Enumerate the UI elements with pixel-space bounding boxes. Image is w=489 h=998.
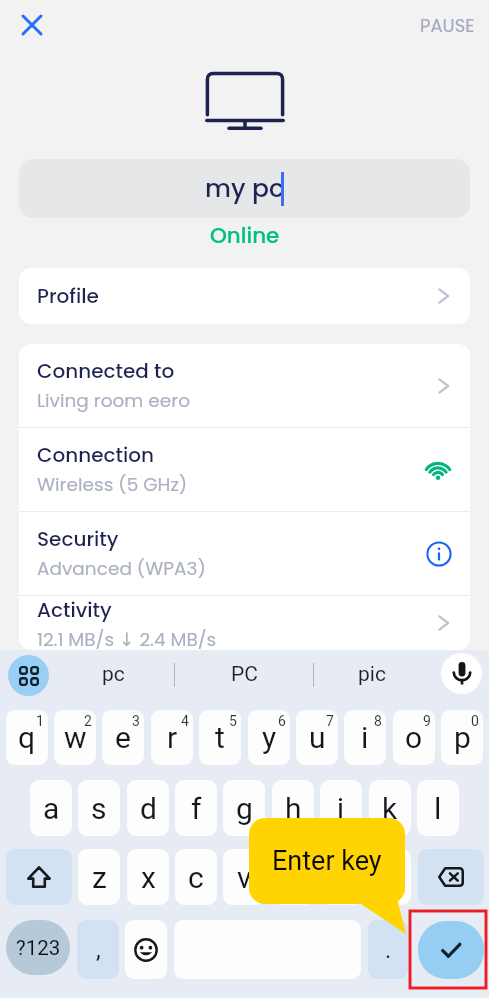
button[interactable]: x [127, 849, 169, 905]
button[interactable]: d [127, 780, 169, 836]
staticText: pc [102, 662, 125, 687]
button[interactable]: Activity [19, 596, 470, 650]
button[interactable]: , [77, 920, 119, 979]
staticText: 1 [36, 713, 44, 729]
staticText: w [64, 720, 87, 755]
staticText: q [18, 720, 36, 755]
button[interactable]: l [417, 780, 459, 836]
staticText: o [405, 720, 423, 755]
button[interactable]: w [54, 710, 96, 765]
button[interactable]: ?123 [6, 920, 70, 975]
staticText: k [382, 791, 398, 826]
staticText: y [262, 720, 277, 755]
staticText: 6 [278, 713, 286, 729]
button[interactable]: PC [176, 650, 313, 699]
button[interactable]: Emoji [125, 920, 167, 979]
staticText: Profile [37, 282, 99, 310]
staticText: pic [358, 662, 386, 687]
button[interactable]: Connected to [19, 344, 470, 427]
staticText: i [361, 720, 369, 755]
staticText: , [96, 936, 101, 964]
button[interactable]: Connection [19, 428, 470, 511]
staticText: d [140, 791, 157, 826]
staticText: m [377, 860, 404, 895]
staticText: Connection [37, 441, 154, 469]
button[interactable]: pc [53, 650, 174, 699]
staticText: j [337, 791, 345, 826]
staticText: Wireless (5 GHz) [37, 472, 188, 498]
button[interactable]: s [78, 780, 120, 836]
button[interactable]: y [248, 710, 290, 765]
staticText: u [309, 720, 326, 755]
staticText: 12.1 MB/s ↓ 2.4 MB/s [37, 627, 217, 650]
button[interactable]: b [272, 849, 314, 905]
button[interactable]: j [320, 780, 362, 836]
button[interactable]: t [199, 710, 241, 765]
staticText: Activity [37, 596, 112, 624]
button[interactable]: m [369, 849, 411, 905]
staticText: f [191, 791, 202, 826]
button[interactable]: h [272, 780, 314, 836]
staticText: g [236, 791, 253, 826]
staticText: t [215, 720, 225, 755]
staticText: PAUSE [420, 13, 475, 38]
staticText: 8 [374, 713, 382, 729]
staticText: ?123 [16, 936, 61, 960]
button[interactable]: Shift [6, 849, 72, 905]
staticText: x [141, 860, 156, 895]
button[interactable]: e [102, 710, 144, 765]
staticText: 4 [181, 713, 189, 729]
staticText: c [188, 860, 204, 895]
staticText: Living room eero [37, 388, 191, 414]
staticText: . [385, 936, 392, 964]
button[interactable]: a [30, 780, 72, 836]
button[interactable]: c [175, 849, 217, 905]
button[interactable]: Backspace [418, 849, 484, 905]
staticText: 3 [132, 713, 140, 729]
button[interactable]: o [393, 710, 435, 765]
button[interactable]: v [223, 849, 265, 905]
button[interactable]: r [151, 710, 193, 765]
staticText: my pc [205, 171, 284, 206]
staticText: v [237, 860, 252, 895]
button[interactable]: Enter [411, 912, 487, 988]
button[interactable]: Toolbar [8, 655, 49, 696]
button[interactable]: q [6, 710, 48, 765]
staticText: PC [231, 662, 258, 687]
staticText: z [92, 860, 107, 895]
button[interactable]: f [175, 780, 217, 836]
staticText: l [434, 791, 442, 826]
staticText: n [333, 860, 350, 895]
staticText: a [43, 791, 60, 826]
staticText: Connected to [37, 357, 175, 385]
staticText: 2 [84, 713, 92, 729]
staticText: 9 [423, 713, 431, 729]
button[interactable]: my pc [19, 159, 470, 218]
staticText: Enter key [272, 845, 382, 877]
button[interactable]: Security [19, 512, 470, 595]
button[interactable]: i [344, 710, 386, 765]
button[interactable]: pic [315, 650, 428, 699]
button[interactable]: p [441, 710, 483, 765]
button[interactable]: Voice input [441, 653, 482, 694]
staticText: Advanced (WPA3) [37, 556, 206, 582]
button[interactable]: g [223, 780, 265, 836]
staticText: 5 [229, 713, 237, 729]
staticText: h [285, 791, 302, 826]
button[interactable]: k [369, 780, 411, 836]
button[interactable]: Profile [19, 268, 470, 324]
button[interactable]: . [368, 920, 408, 979]
button[interactable]: z [78, 849, 120, 905]
staticText: e [115, 720, 131, 755]
button[interactable]: PAUSE [420, 13, 475, 38]
button[interactable]: n [320, 849, 362, 905]
staticText: Security [37, 525, 119, 553]
staticText: 0 [471, 713, 479, 729]
staticText: s [91, 791, 107, 826]
button[interactable]: u [296, 710, 338, 765]
staticText: Online [210, 220, 280, 250]
staticText: r [167, 720, 178, 755]
button[interactable]: Close [10, 3, 54, 47]
staticText: p [454, 720, 471, 755]
